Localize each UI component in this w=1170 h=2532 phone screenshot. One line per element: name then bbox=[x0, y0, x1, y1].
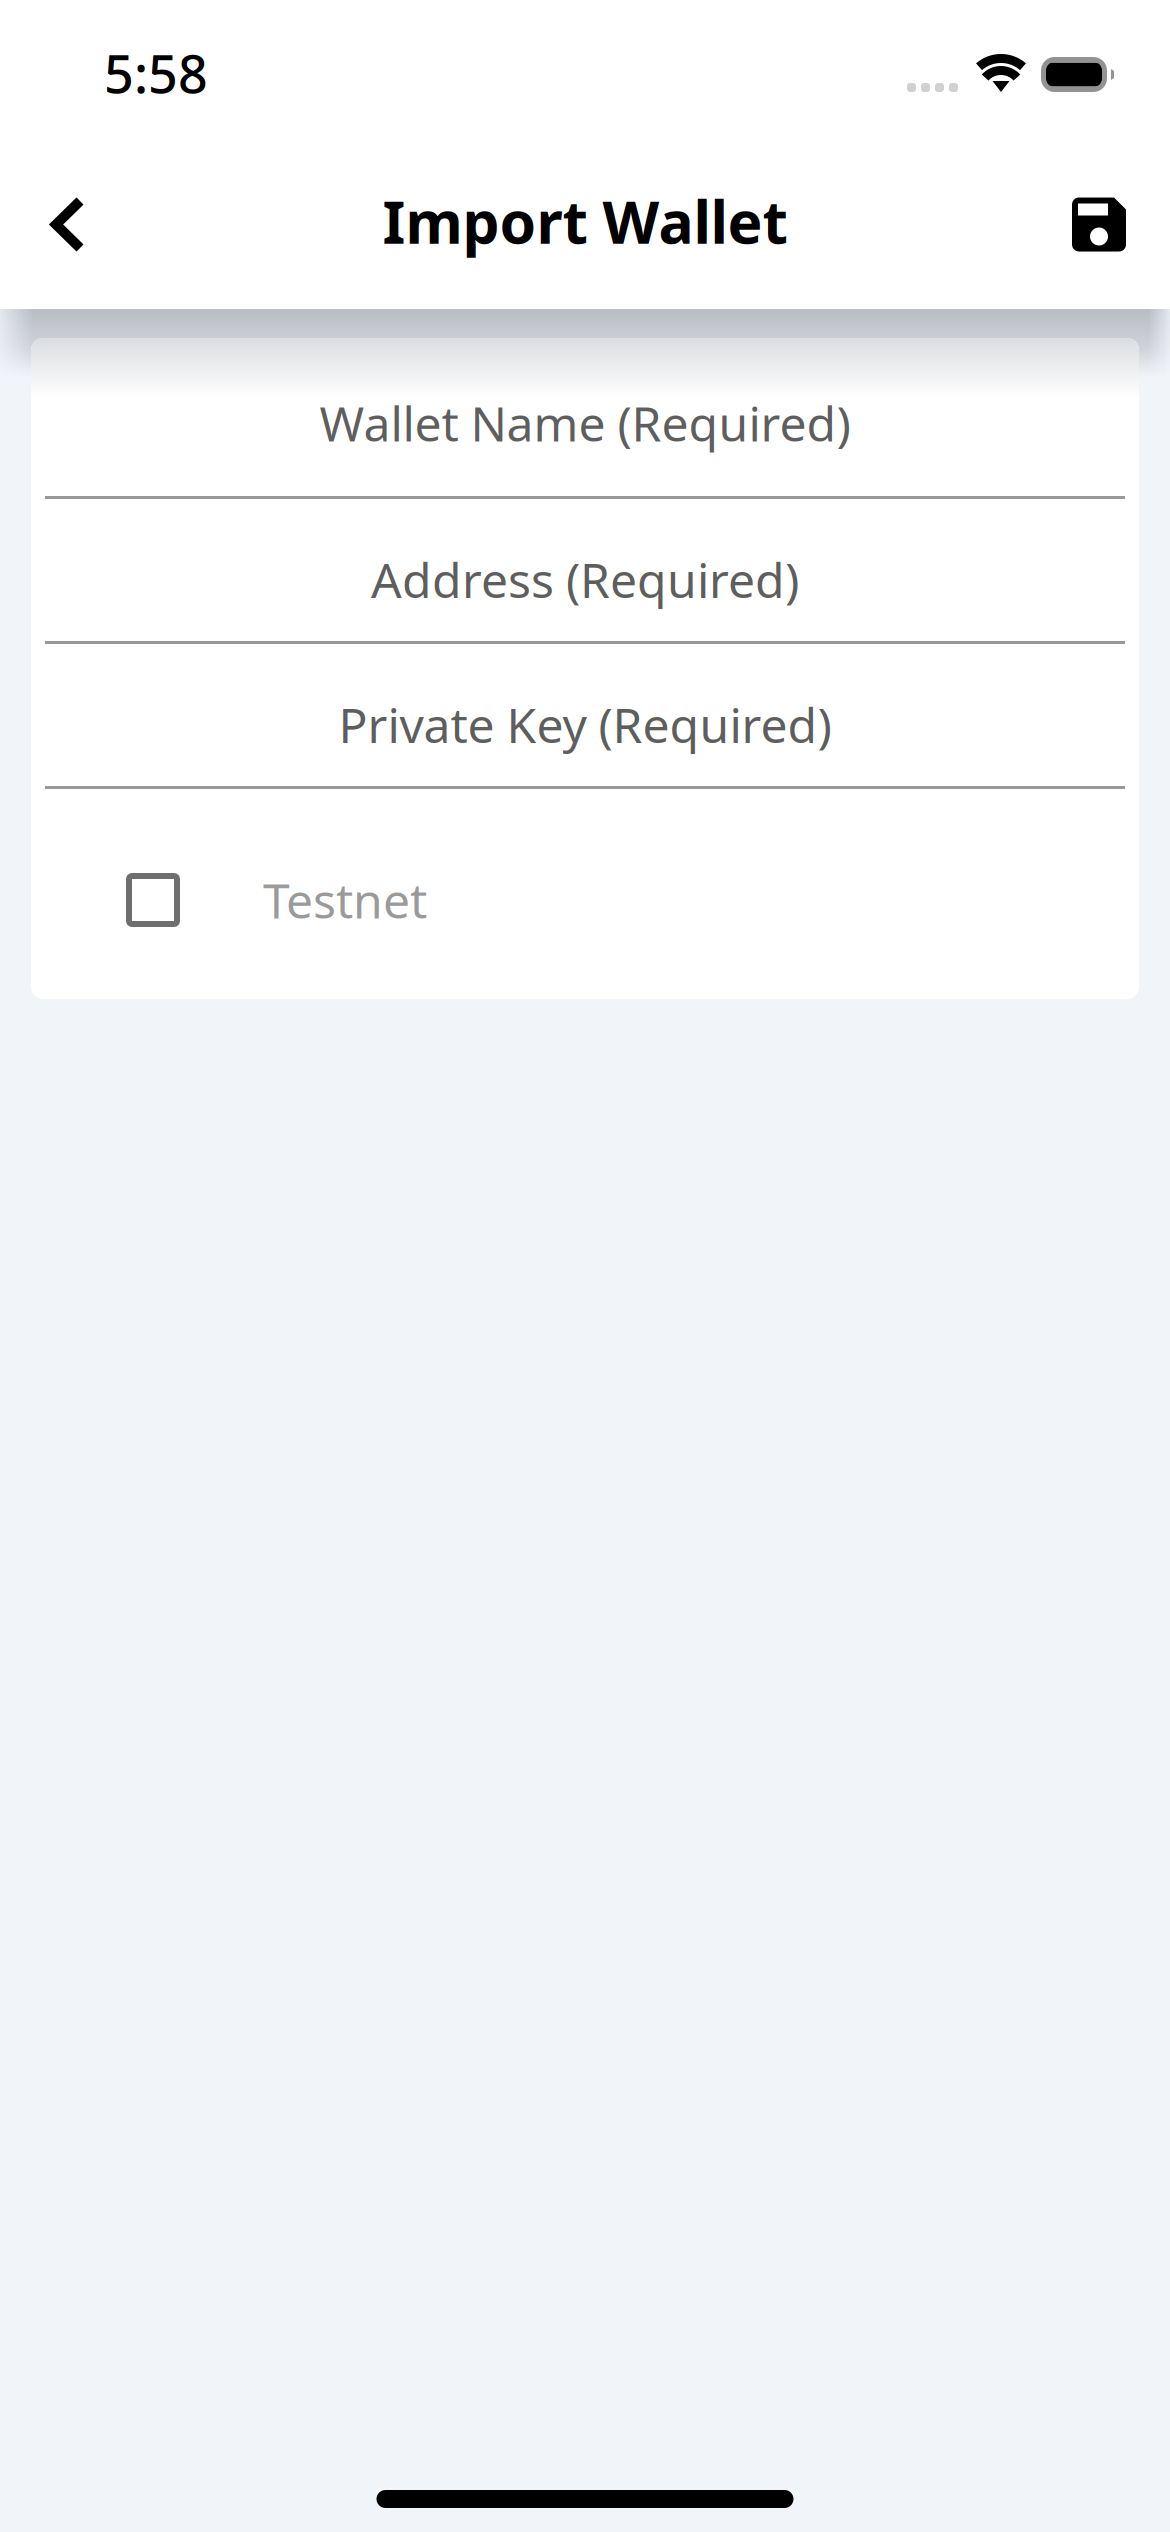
button[interactable]: Private Key (Required) bbox=[31, 644, 1139, 789]
staticText: Testnet bbox=[263, 868, 427, 932]
button[interactable]: Testnet bbox=[31, 789, 1139, 999]
staticText: Private Key (Required) bbox=[338, 693, 831, 756]
staticText: 5:58 bbox=[104, 38, 208, 108]
button[interactable]: Back bbox=[12, 168, 124, 280]
button[interactable]: Save bbox=[1043, 168, 1155, 280]
button[interactable]: Wallet Name (Required) bbox=[31, 338, 1139, 499]
button[interactable]: Address (Required) bbox=[31, 499, 1139, 644]
staticText: Address (Required) bbox=[371, 548, 799, 611]
staticText: Import Wallet bbox=[382, 182, 787, 260]
staticText: Wallet Name (Required) bbox=[319, 391, 850, 455]
